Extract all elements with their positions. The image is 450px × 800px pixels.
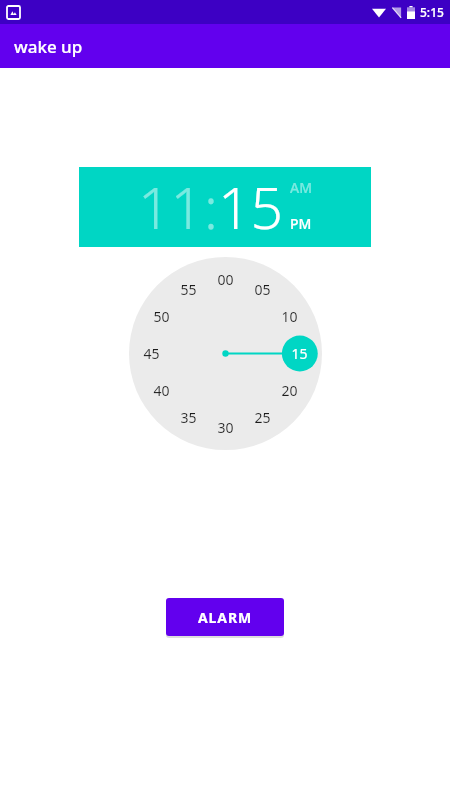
button[interactable]: PM [290, 213, 312, 234]
button[interactable]: 11 [138, 168, 204, 246]
button[interactable]: Minute selector clock [129, 257, 322, 450]
staticText: 55 [180, 280, 197, 299]
staticText: 15 [291, 344, 308, 363]
staticText: 15 [218, 168, 284, 246]
staticText: 20 [281, 381, 298, 400]
staticText: ALARM [198, 608, 253, 627]
staticText: PM [290, 214, 312, 233]
staticText: 11 [138, 168, 204, 246]
staticText: 00 [217, 270, 234, 289]
staticText: AM [290, 178, 313, 197]
staticText: 50 [153, 307, 170, 326]
staticText: 25 [254, 408, 271, 427]
staticText: 40 [153, 381, 170, 400]
staticText: 35 [180, 408, 197, 427]
button[interactable]: 15 [218, 168, 284, 246]
button[interactable]: ALARM [166, 598, 284, 636]
staticText: : [204, 168, 218, 246]
button[interactable]: AM [290, 177, 313, 198]
staticText: wake up [14, 35, 83, 58]
other: Image notification [7, 6, 20, 19]
staticText: 10 [281, 307, 298, 326]
staticText: 30 [217, 418, 234, 437]
staticText: 05 [254, 280, 271, 299]
staticText: 5:15 [420, 4, 444, 20]
staticText: 45 [143, 344, 160, 363]
